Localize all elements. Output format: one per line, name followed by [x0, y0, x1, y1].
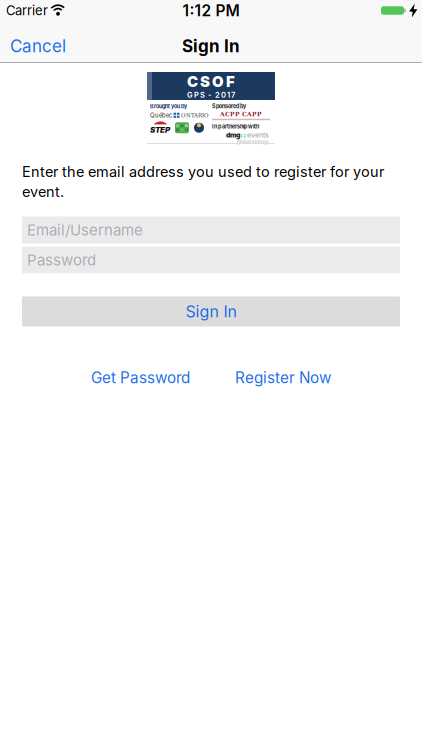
- staticText: global energy: [237, 139, 269, 144]
- staticText: Québec: [150, 112, 172, 119]
- button[interactable]: Register Now: [235, 368, 331, 387]
- staticText: Get Password: [91, 368, 190, 387]
- staticText: Cancel: [10, 36, 66, 56]
- staticText: G P S - 2 0 1 7: [187, 90, 235, 100]
- staticText: Brought you by: [150, 103, 187, 110]
- staticText: event.: [22, 183, 64, 200]
- staticText: ONTARIO: [181, 112, 209, 118]
- staticText: In partnership with: [212, 123, 259, 130]
- button[interactable]: Sign In: [22, 296, 400, 326]
- staticText: Register Now: [235, 368, 331, 387]
- staticText: Sign In: [185, 302, 236, 321]
- staticText: Sign In: [182, 36, 240, 56]
- staticText: 1:12 PM: [182, 1, 239, 20]
- staticText: C S O F: [187, 72, 235, 90]
- button[interactable]: Password: [22, 246, 400, 273]
- staticText: ::: [240, 131, 246, 139]
- button[interactable]: Email/Username: [22, 216, 400, 243]
- button[interactable]: Cancel: [10, 36, 66, 56]
- staticText: events: [247, 131, 269, 139]
- staticText: Sponsored by: [212, 103, 246, 110]
- button[interactable]: Get Password: [91, 368, 190, 387]
- staticText: Password: [27, 251, 96, 269]
- staticText: dmg: [226, 131, 240, 139]
- staticText: STEP: [150, 125, 170, 135]
- staticText: Email/Username: [27, 221, 143, 239]
- staticText: ACPP CAPP: [220, 111, 262, 118]
- staticText: Carrier: [6, 3, 48, 18]
- staticText: Enter the email address you used to regi…: [22, 163, 384, 180]
